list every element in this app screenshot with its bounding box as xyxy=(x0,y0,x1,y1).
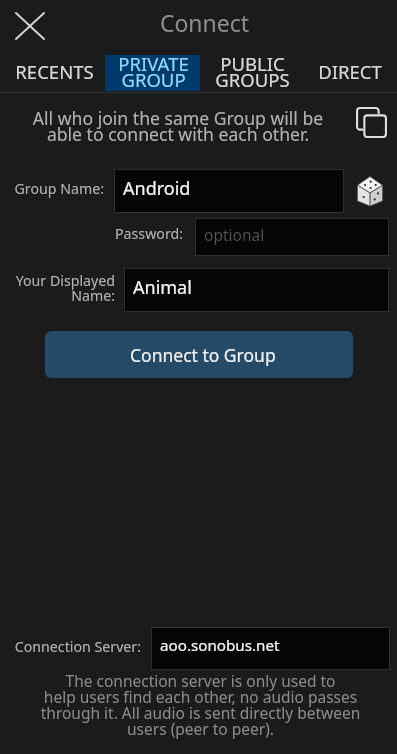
staticText: Animal xyxy=(133,275,192,300)
staticText: Your Displayed Name: xyxy=(2,271,115,305)
button[interactable]: PUBLIC GROUPS xyxy=(203,49,302,94)
staticText: DIRECT xyxy=(318,59,382,84)
staticText: Connect to Group xyxy=(130,343,276,367)
button[interactable]: Random group name xyxy=(357,176,383,206)
button[interactable]: Animal xyxy=(125,269,388,311)
staticText: The connection server is only used to he… xyxy=(12,670,389,739)
staticText: Connection Server: xyxy=(0,637,141,656)
staticText: Connect xyxy=(6,7,397,38)
button[interactable]: Copy group link xyxy=(347,98,395,146)
button[interactable]: aoo.sonobus.net xyxy=(152,628,389,669)
button[interactable]: optional xyxy=(196,219,388,255)
staticText: Android xyxy=(123,176,191,201)
staticText: Group Name: xyxy=(0,179,104,198)
staticText: All who join the same Group will be able… xyxy=(17,106,339,146)
button[interactable]: PRIVATE GROUP xyxy=(104,49,203,94)
button[interactable]: RECENTS xyxy=(4,49,104,94)
button[interactable]: Android xyxy=(115,170,343,212)
staticText: Password: xyxy=(0,224,183,243)
button[interactable]: Close xyxy=(5,3,55,49)
staticText: PRIVATE GROUP xyxy=(118,51,189,93)
staticText: PUBLIC GROUPS xyxy=(215,51,290,93)
button[interactable]: Connect to Group xyxy=(45,331,353,378)
staticText: aoo.sonobus.net xyxy=(160,635,280,656)
staticText: optional xyxy=(204,224,265,245)
staticText: RECENTS xyxy=(15,59,94,84)
button[interactable]: DIRECT xyxy=(302,49,397,94)
